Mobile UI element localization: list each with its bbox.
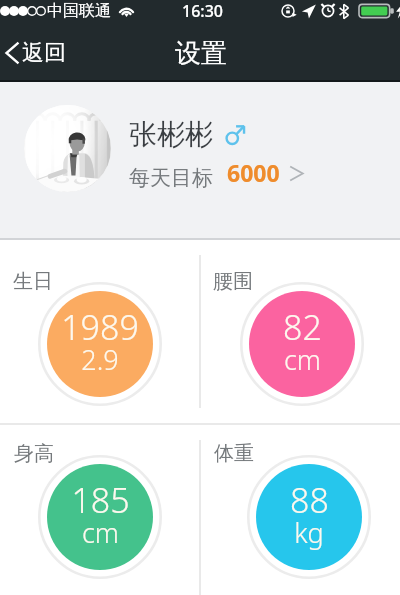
button[interactable]: 腰围 xyxy=(200,240,400,423)
staticText: kg xyxy=(294,514,324,551)
staticText: 张彬彬 xyxy=(129,117,213,152)
staticText: 返回 xyxy=(22,39,66,67)
staticText: 16:30 xyxy=(182,0,223,22)
staticText: cm xyxy=(284,341,321,378)
button[interactable]: 张彬彬 xyxy=(0,82,400,238)
staticText: 腰围 xyxy=(213,269,253,294)
button[interactable]: 返回 xyxy=(0,28,82,78)
staticText: 6000 xyxy=(227,157,280,188)
button[interactable]: 体重 xyxy=(200,425,400,595)
staticText: cm xyxy=(82,514,119,551)
staticText: 体重 xyxy=(214,441,254,466)
staticText: 身高 xyxy=(14,441,54,466)
button[interactable]: 身高 xyxy=(0,425,200,595)
staticText: 2.9 xyxy=(81,341,119,378)
staticText: 生日 xyxy=(13,269,53,294)
staticText: 中国联通 xyxy=(47,1,111,21)
staticText: 1989 xyxy=(61,304,139,350)
staticText: 每天目标 xyxy=(129,165,213,191)
button[interactable]: 生日 xyxy=(0,240,200,423)
staticText: 185 xyxy=(71,477,130,523)
staticText: 82 xyxy=(283,304,322,350)
staticText: 设置 xyxy=(175,37,227,70)
staticText: 88 xyxy=(290,477,329,523)
